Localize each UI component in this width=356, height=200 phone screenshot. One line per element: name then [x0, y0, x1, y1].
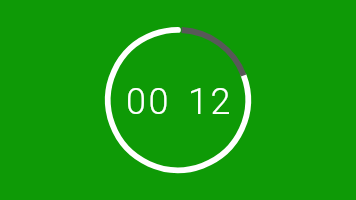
staticText: 12	[188, 81, 233, 123]
staticText: 00	[126, 81, 171, 123]
button[interactable]: Countdown timer, 00 minutes 12 seconds r…	[105, 27, 251, 173]
